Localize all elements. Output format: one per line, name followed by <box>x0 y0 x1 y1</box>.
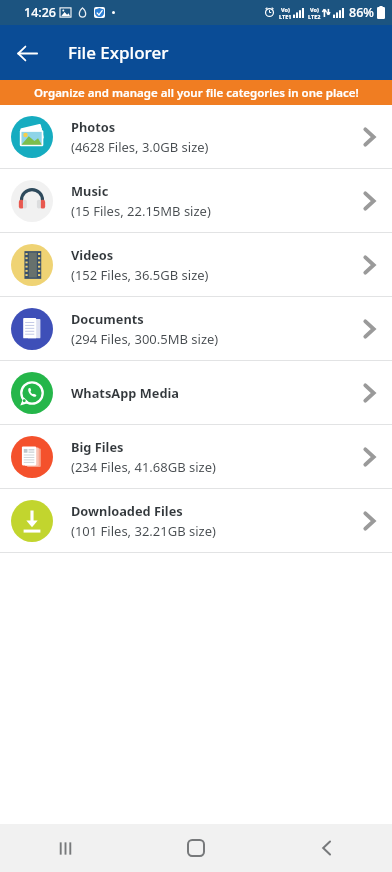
staticText: Photos <box>71 118 116 135</box>
staticText: Music <box>71 182 109 199</box>
staticText: 14:26 <box>24 4 57 21</box>
staticText: Documents <box>71 310 144 327</box>
staticText: WhatsApp Media <box>71 384 179 401</box>
button[interactable]: Photos <box>0 105 392 168</box>
staticText: Downloaded Files <box>71 502 183 519</box>
button[interactable]: WhatsApp Media <box>0 361 392 424</box>
staticText: Vo) <box>310 6 319 13</box>
staticText: (152 Files, 36.5GB size) <box>71 266 209 284</box>
staticText: 86% <box>349 4 374 21</box>
staticText: (4628 Files, 3.0GB size) <box>71 138 209 156</box>
button[interactable]: Back <box>261 824 392 872</box>
staticText: Big Files <box>71 438 124 455</box>
button[interactable]: Home <box>130 824 261 872</box>
staticText: LTE2 <box>308 13 321 20</box>
staticText: File Explorer <box>68 41 169 64</box>
button[interactable]: Big Files <box>0 425 392 488</box>
button[interactable]: Recents <box>0 824 130 872</box>
staticText: (234 Files, 41.68GB size) <box>71 458 216 476</box>
button[interactable]: Downloaded Files <box>0 489 392 552</box>
button[interactable]: Videos <box>0 233 392 296</box>
staticText: (294 Files, 300.5MB size) <box>71 330 219 348</box>
staticText: (101 Files, 32.21GB size) <box>71 522 216 540</box>
staticText: Videos <box>71 246 114 263</box>
button[interactable]: Music <box>0 169 392 232</box>
staticText: (15 Files, 22.15MB size) <box>71 202 211 220</box>
staticText: Organize and manage all your file catego… <box>34 85 359 101</box>
button[interactable]: Back <box>10 36 44 70</box>
staticText: Vo) <box>281 6 290 13</box>
staticText: LTE1 <box>279 13 292 20</box>
button[interactable]: Documents <box>0 297 392 360</box>
